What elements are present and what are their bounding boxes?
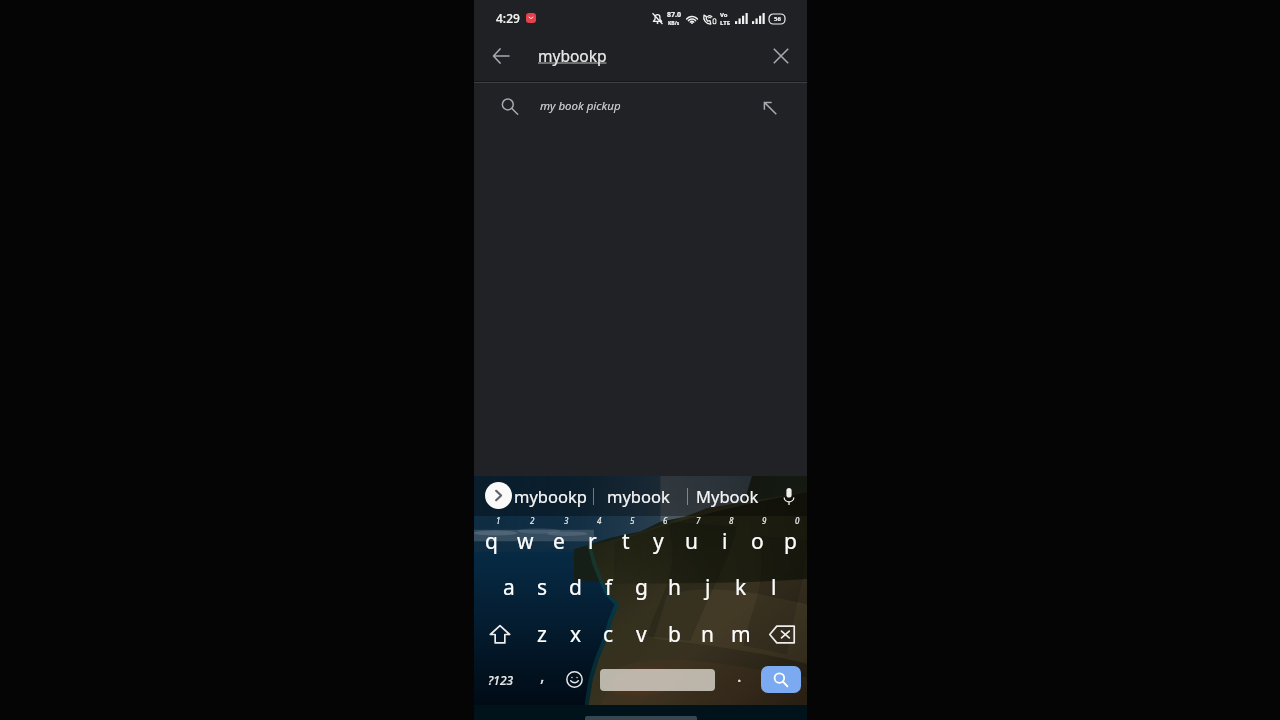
staticText: j — [705, 573, 711, 602]
button[interactable]: 6 — [642, 516, 675, 564]
staticText: a — [503, 573, 515, 602]
staticText: . — [737, 664, 742, 687]
staticText: LTE — [720, 19, 731, 27]
button[interactable]: f — [592, 564, 625, 611]
staticText: k — [735, 573, 747, 602]
staticText: KB/s — [668, 20, 680, 27]
staticText: x — [570, 620, 582, 649]
button[interactable]: Backspace — [757, 611, 807, 658]
button[interactable]: 5 — [609, 516, 642, 564]
button[interactable]: 9 — [741, 516, 774, 564]
staticText: m — [731, 620, 751, 649]
button[interactable]: Use suggestion — [733, 83, 807, 133]
staticText: 9 — [762, 515, 767, 526]
button[interactable]: 7 — [675, 516, 708, 564]
staticText: 7 — [696, 515, 701, 526]
staticText: r — [588, 527, 597, 556]
button[interactable]: Clear query — [755, 36, 807, 81]
staticText: Mybook — [696, 485, 759, 507]
staticText: s — [537, 573, 548, 602]
staticText: mybookp — [514, 485, 587, 507]
button[interactable]: Voice input — [774, 476, 802, 516]
staticText: my book pickup — [540, 98, 621, 114]
button[interactable]: ?123 — [477, 658, 525, 705]
button[interactable]: . — [727, 658, 751, 705]
staticText: o — [751, 527, 764, 556]
staticText: 2 — [530, 515, 535, 526]
staticText: 5 — [630, 515, 635, 526]
button[interactable]: Emoji — [559, 658, 589, 705]
staticText: g — [635, 573, 648, 602]
button[interactable]: m — [724, 611, 757, 658]
staticText: 4 — [597, 515, 602, 526]
staticText: w — [517, 527, 534, 556]
button[interactable]: Search — [761, 658, 801, 705]
button[interactable]: 0 — [774, 516, 807, 564]
staticText: Vo — [720, 11, 728, 19]
staticText: ?123 — [488, 672, 514, 688]
button[interactable]: g — [625, 564, 658, 611]
staticText: n — [701, 620, 714, 649]
staticText: l — [771, 573, 777, 602]
staticText: b — [668, 620, 681, 649]
staticText: 6 — [663, 515, 668, 526]
staticText: 1 — [496, 515, 501, 526]
staticText: q — [485, 527, 498, 556]
staticText: c — [603, 620, 614, 649]
button[interactable]: j — [691, 564, 724, 611]
button[interactable]: Mybook — [687, 476, 767, 516]
staticText: f — [605, 573, 613, 602]
staticText: , — [540, 664, 545, 687]
button[interactable]: 8 — [708, 516, 741, 564]
button[interactable]: More suggestions — [485, 482, 512, 509]
button[interactable]: 3 — [542, 516, 576, 564]
staticText: 4:29 — [496, 10, 520, 26]
button[interactable]: b — [658, 611, 691, 658]
button[interactable]: l — [757, 564, 790, 611]
staticText: d — [569, 573, 582, 602]
button[interactable]: 4 — [576, 516, 609, 564]
button[interactable]: c — [592, 611, 625, 658]
staticText: y — [653, 527, 664, 556]
staticText: z — [537, 620, 547, 649]
staticText: 0 — [795, 515, 800, 526]
button[interactable]: mybookp — [510, 476, 591, 516]
button[interactable]: v — [625, 611, 658, 658]
button[interactable]: z — [525, 611, 559, 658]
button[interactable]: , — [528, 658, 556, 705]
button[interactable]: 2 — [508, 516, 542, 564]
staticText: 56 — [774, 15, 781, 23]
button[interactable]: Shift — [474, 611, 525, 658]
button[interactable]: h — [658, 564, 691, 611]
button[interactable]: a — [492, 564, 526, 611]
staticText: p — [784, 527, 797, 556]
staticText: u — [685, 527, 698, 556]
button[interactable]: Back — [474, 36, 518, 81]
button[interactable] — [600, 658, 715, 705]
staticText: 87.0 — [667, 10, 681, 20]
staticText: h — [668, 573, 681, 602]
staticText: t — [622, 527, 630, 556]
staticText: e — [553, 527, 565, 556]
button[interactable]: my book pickup — [474, 83, 807, 133]
button[interactable]: d — [559, 564, 592, 611]
button[interactable]: 1 — [474, 516, 508, 564]
button[interactable]: k — [724, 564, 757, 611]
button[interactable]: n — [691, 611, 724, 658]
staticText: mybookp — [538, 45, 607, 66]
staticText: 8 — [729, 515, 734, 526]
staticText: i — [722, 527, 728, 556]
button[interactable]: mybook — [596, 476, 681, 516]
button[interactable]: x — [559, 611, 592, 658]
staticText: v — [636, 620, 647, 649]
button[interactable]: s — [526, 564, 559, 611]
staticText: mybook — [607, 485, 670, 507]
staticText: 3 — [564, 515, 569, 526]
